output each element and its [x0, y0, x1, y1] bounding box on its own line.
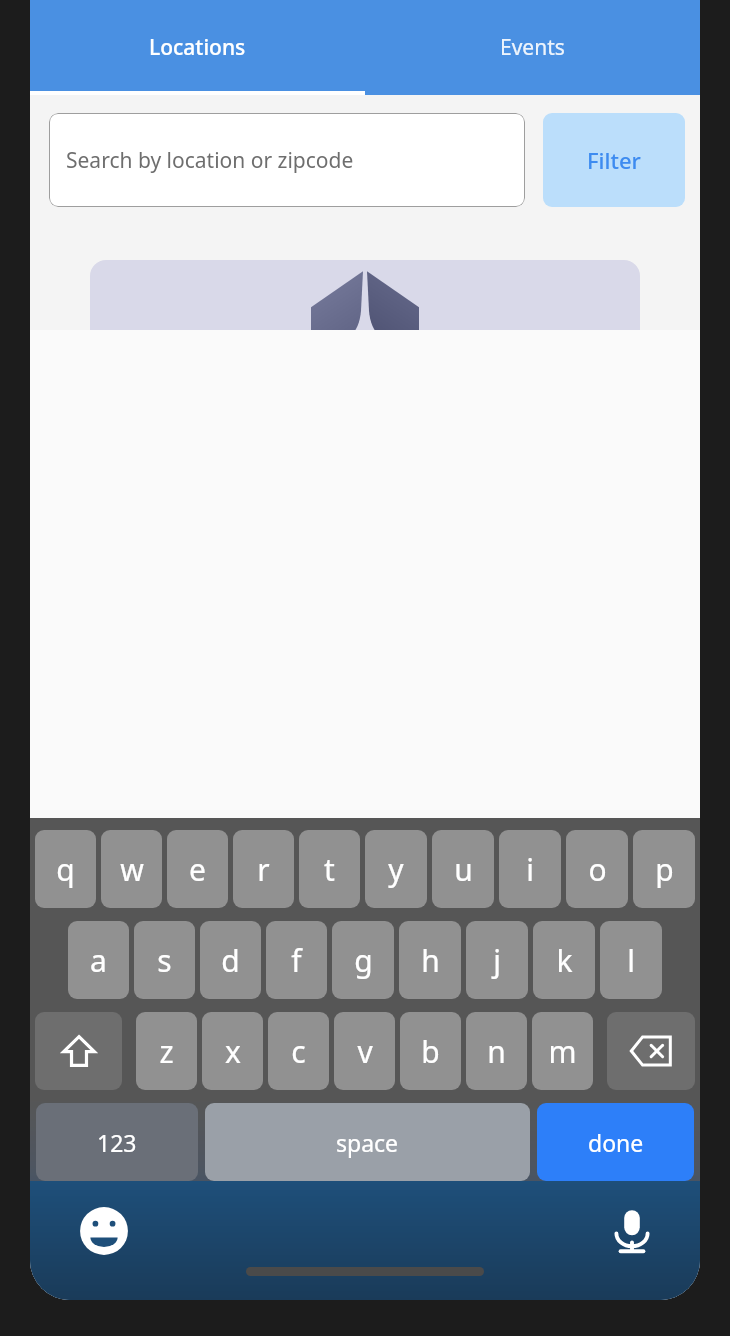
- staticText: done: [588, 1127, 644, 1158]
- staticText: 123: [97, 1127, 137, 1158]
- button[interactable]: e: [167, 830, 228, 908]
- button[interactable]: Shift: [35, 1012, 122, 1090]
- button[interactable]: y: [365, 830, 427, 908]
- button[interactable]: Filter: [543, 113, 685, 207]
- staticText: c: [291, 1031, 306, 1072]
- staticText: s: [157, 940, 172, 981]
- button[interactable]: c: [268, 1012, 329, 1090]
- button[interactable]: r: [233, 830, 294, 908]
- button[interactable]: f: [266, 921, 327, 999]
- staticText: space: [336, 1127, 399, 1158]
- button[interactable]: v: [334, 1012, 395, 1090]
- staticText: o: [588, 849, 607, 890]
- staticText: a: [90, 940, 107, 981]
- button[interactable]: x: [202, 1012, 263, 1090]
- button[interactable]: Events: [365, 0, 700, 95]
- staticText: i: [526, 849, 534, 890]
- button[interactable]: [90, 260, 640, 360]
- button[interactable]: j: [466, 921, 528, 999]
- staticText: t: [324, 849, 335, 890]
- staticText: r: [257, 849, 270, 890]
- staticText: v: [357, 1031, 373, 1072]
- button[interactable]: Backspace: [607, 1012, 695, 1090]
- button[interactable]: u: [432, 830, 494, 908]
- button[interactable]: m: [532, 1012, 593, 1090]
- button[interactable]: d: [200, 921, 261, 999]
- staticText: Events: [500, 33, 565, 62]
- staticText: x: [225, 1031, 241, 1072]
- staticText: u: [454, 849, 473, 890]
- staticText: e: [189, 849, 206, 890]
- staticText: q: [56, 849, 75, 890]
- button[interactable]: w: [101, 830, 162, 908]
- staticText: p: [655, 849, 674, 890]
- staticText: y: [388, 849, 404, 890]
- button[interactable]: z: [136, 1012, 197, 1090]
- staticText: z: [159, 1031, 174, 1072]
- button[interactable]: k: [533, 921, 595, 999]
- staticText: k: [556, 940, 573, 981]
- staticText: Locations: [149, 33, 246, 62]
- staticText: f: [291, 940, 302, 981]
- staticText: h: [421, 940, 440, 981]
- staticText: g: [354, 940, 373, 981]
- button[interactable]: b: [400, 1012, 461, 1090]
- button[interactable]: o: [566, 830, 628, 908]
- staticText: Filter: [587, 145, 641, 175]
- button[interactable]: done: [537, 1103, 694, 1181]
- button[interactable]: h: [399, 921, 461, 999]
- staticText: Search by location or zipcode: [66, 146, 354, 175]
- staticText: b: [421, 1031, 440, 1072]
- button[interactable]: space: [205, 1103, 530, 1181]
- staticText: l: [627, 940, 635, 981]
- staticText: w: [120, 849, 144, 890]
- button[interactable]: q: [35, 830, 96, 908]
- staticText: d: [221, 940, 240, 981]
- button[interactable]: a: [68, 921, 129, 999]
- staticText: j: [493, 940, 501, 981]
- button[interactable]: i: [499, 830, 561, 908]
- staticText: m: [548, 1031, 577, 1072]
- button[interactable]: t: [299, 830, 360, 908]
- button[interactable]: Emoji: [78, 1205, 130, 1257]
- button[interactable]: Voice input: [606, 1205, 658, 1257]
- button[interactable]: n: [466, 1012, 527, 1090]
- button[interactable]: l: [600, 921, 662, 999]
- button[interactable]: Search by location or zipcode: [49, 113, 525, 207]
- button[interactable]: p: [633, 830, 695, 908]
- button[interactable]: g: [332, 921, 394, 999]
- button[interactable]: s: [134, 921, 195, 999]
- button[interactable]: Locations: [30, 0, 365, 95]
- staticText: n: [487, 1031, 506, 1072]
- button[interactable]: 123: [36, 1103, 198, 1181]
